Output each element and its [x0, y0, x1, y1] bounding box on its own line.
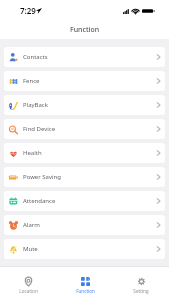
staticText: Alarm — [23, 221, 40, 229]
staticText: Fence — [23, 77, 40, 85]
button[interactable]: Attendance — [4, 191, 165, 211]
button[interactable]: Power Saving — [4, 167, 165, 187]
staticText: Mute — [23, 245, 38, 253]
other: Location — [24, 277, 33, 286]
staticText: PlayBack — [23, 101, 48, 109]
button[interactable]: Location — [0, 267, 57, 300]
staticText: Attendance — [23, 197, 56, 205]
staticText: Function — [70, 25, 100, 35]
staticText: Location — [19, 288, 38, 294]
staticText: Find Device — [23, 125, 56, 133]
staticText: Contacts — [23, 53, 48, 61]
button[interactable]: Mute — [4, 239, 165, 259]
button[interactable]: Health — [4, 143, 165, 163]
staticText: Function — [76, 288, 95, 294]
button[interactable]: Function — [57, 267, 113, 300]
staticText: Setting — [133, 288, 149, 294]
button[interactable]: PlayBack — [4, 95, 165, 115]
button[interactable]: Setting — [113, 267, 169, 300]
staticText: 7:29 — [20, 5, 36, 16]
button[interactable]: Alarm — [4, 215, 165, 235]
button[interactable]: Find Device — [4, 119, 165, 139]
button[interactable]: Fence — [4, 71, 165, 91]
staticText: Power Saving — [23, 173, 61, 181]
other: Setting — [137, 277, 146, 286]
staticText: Health — [23, 149, 42, 157]
other: Function — [81, 277, 90, 286]
button[interactable]: Contacts — [4, 47, 165, 67]
